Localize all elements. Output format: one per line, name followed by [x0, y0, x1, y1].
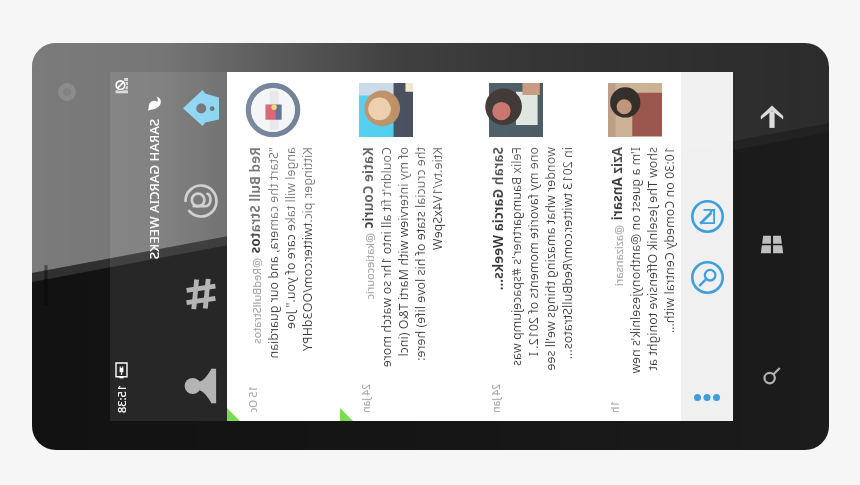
staticText: wonder what amazing things we'll see [542, 147, 559, 371]
staticText: in 2013 twitter.com/RedBullStratos... [559, 147, 576, 360]
staticText: Katie Couric [359, 147, 377, 229]
staticText: @azizansari [611, 225, 626, 287]
staticText: I'm a guest on @anthonyjeselnik's new [627, 147, 644, 374]
staticText: "Start the camera, and our guardian [265, 147, 282, 359]
button[interactable]: Red Bull Stratos [227, 72, 340, 421]
staticText: Sarah Garcia Weeks... [489, 147, 507, 291]
staticText: SARAH GARCIA WEEKS [145, 119, 163, 260]
staticText: of my interview with Marti T&O (incl [395, 147, 412, 357]
button[interactable]: Katie Couric [340, 72, 470, 421]
staticText: 1h [608, 401, 622, 413]
staticText: Red Bull Stratos [246, 147, 264, 254]
staticText: Kittinger. pic.twitter.com/OO3dHPY [299, 147, 316, 352]
staticText: @katiecouric [362, 233, 377, 300]
button[interactable]: More [687, 377, 727, 417]
staticText: Couldn't fit all into 1hr so watch more [378, 147, 395, 368]
button[interactable]: Back [751, 96, 793, 138]
button[interactable]: Start [751, 223, 793, 265]
staticText: 10:30 on Comedy Central with... [661, 147, 678, 334]
button[interactable]: Sarah Garcia Weeks... [470, 72, 589, 421]
button[interactable]: Search [751, 354, 793, 396]
button[interactable]: Compose [686, 195, 728, 237]
staticText: angel will take care of you." Joe [282, 147, 299, 329]
button[interactable]: Messages [175, 363, 227, 409]
staticText: @RedBullStratos [249, 258, 264, 344]
button[interactable]: Aziz Ansari [589, 72, 681, 421]
button[interactable]: Mentions [175, 178, 227, 224]
staticText: Ktie.tv/1V4xSpeW [429, 147, 446, 251]
staticText: 15 Oc [246, 386, 260, 413]
staticText: Aziz Ansari [608, 147, 626, 221]
staticText: the crucial state of his love life) here… [412, 147, 429, 361]
staticText: Felix Baumgartner's #spacejump was [508, 147, 525, 367]
staticText: 24 Jan [359, 384, 373, 413]
staticText: one my favorite moments of 2012. I [525, 147, 542, 357]
staticText: 15:38 [114, 385, 129, 414]
button[interactable]: Hashtags [175, 271, 227, 317]
button[interactable]: Home [175, 85, 227, 131]
staticText: show The Jeselnik Offensive tonight at [644, 147, 661, 371]
staticText: 24 Jan [489, 384, 503, 413]
button[interactable]: Search [686, 256, 728, 298]
